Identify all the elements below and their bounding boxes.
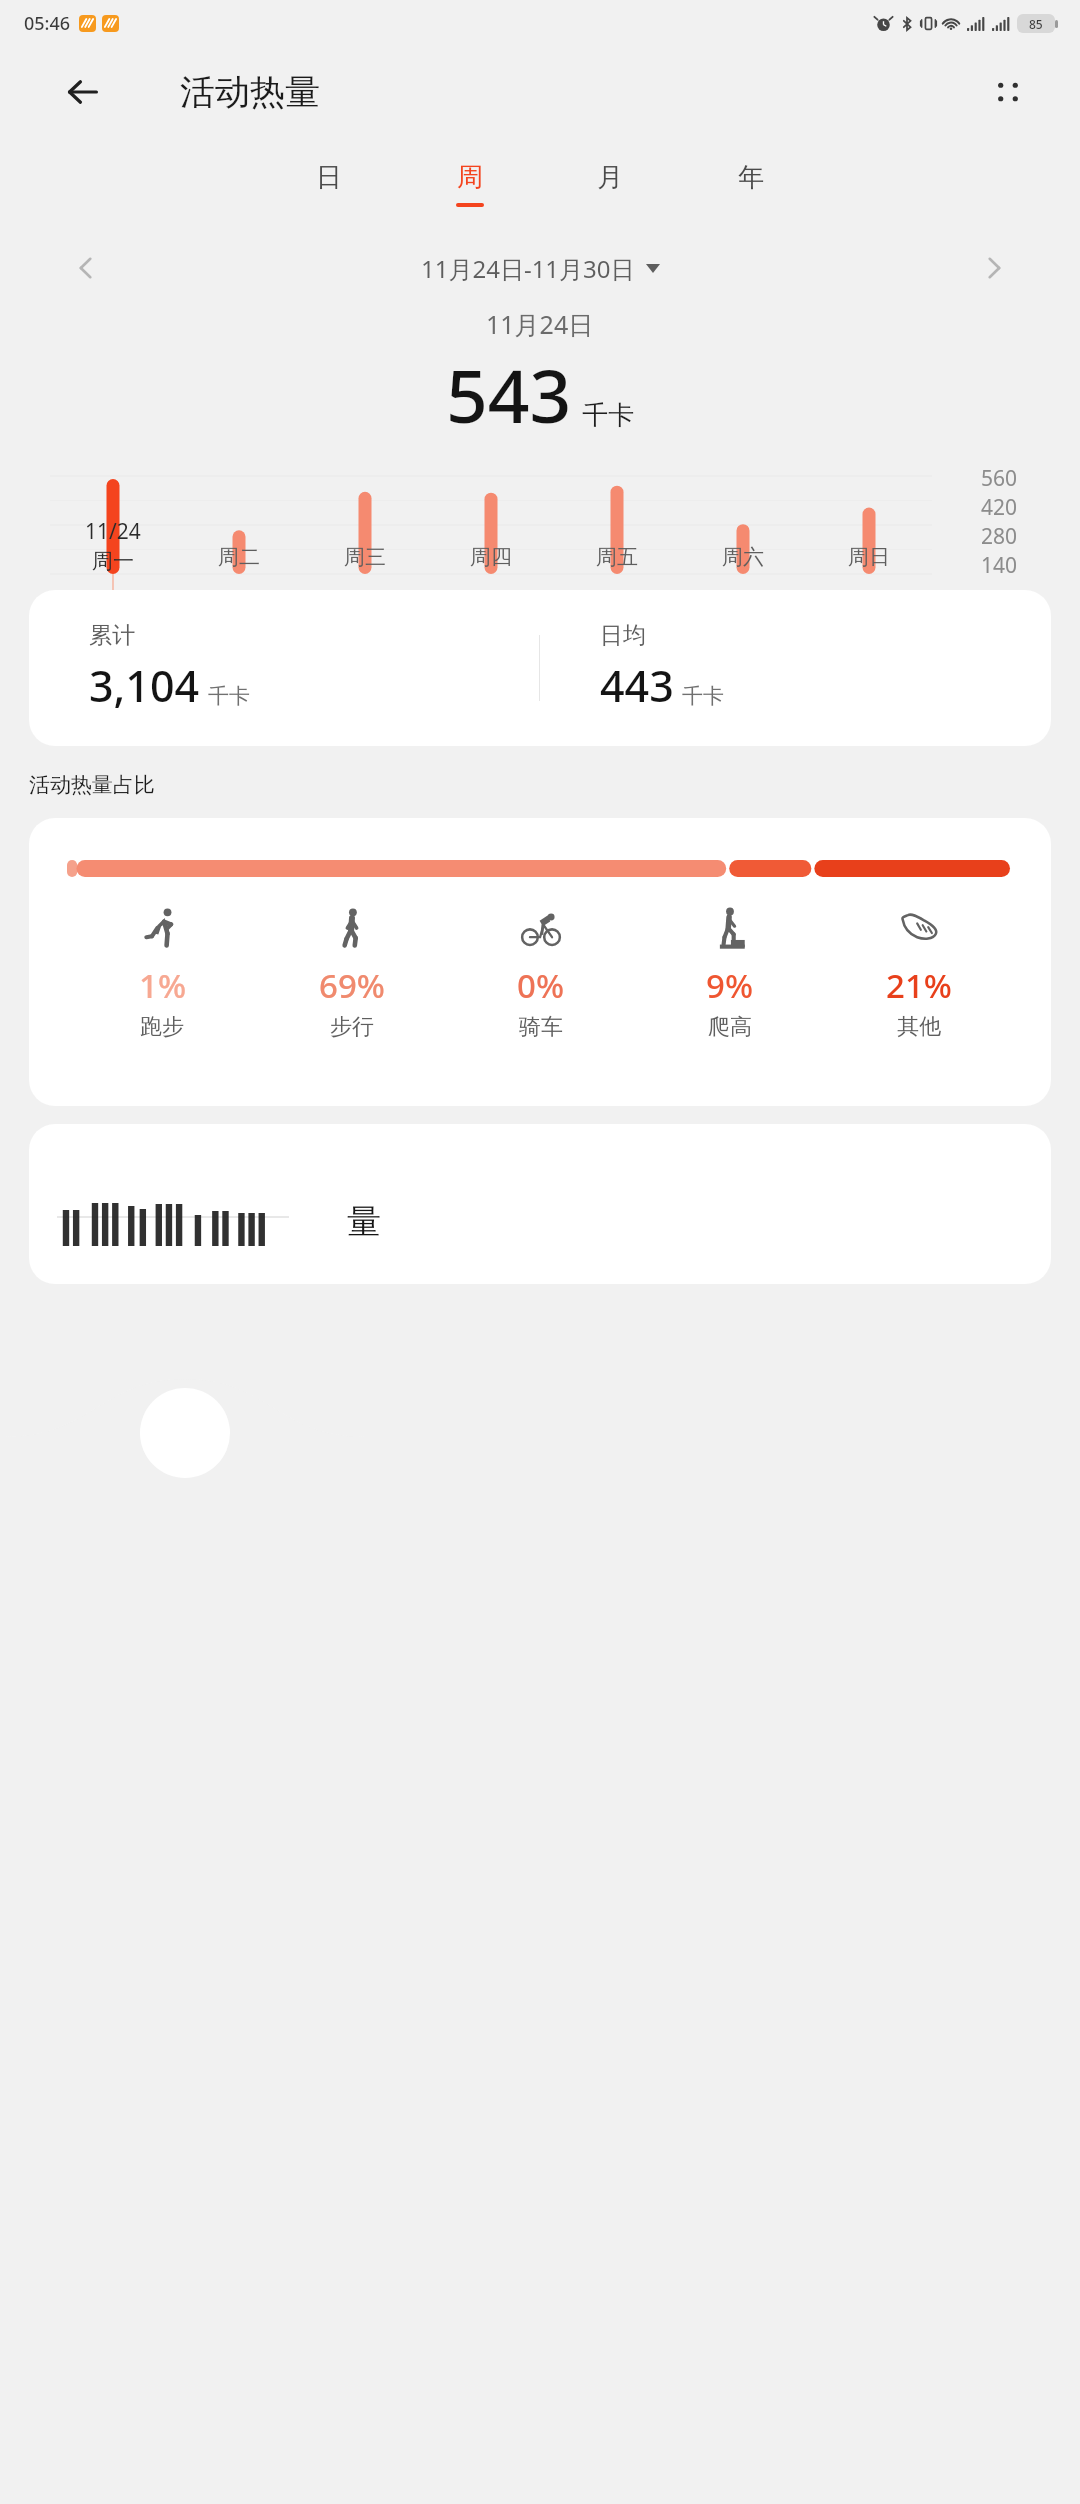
staticText: 千卡: [582, 399, 634, 432]
button[interactable]: 9%: [635, 905, 824, 1041]
staticText: 69%: [319, 963, 385, 1008]
staticText: 量: [347, 1200, 381, 1243]
staticText: 周日: [848, 544, 890, 570]
staticText: 月: [597, 161, 623, 194]
staticText: 日: [316, 161, 342, 194]
staticText: 周三: [344, 544, 386, 570]
button[interactable]: Next week: [968, 243, 1018, 293]
button[interactable]: More options: [982, 66, 1034, 118]
staticText: 560: [981, 464, 1018, 493]
staticText: 85: [1029, 16, 1043, 32]
staticText: 543: [446, 345, 572, 444]
staticText: 活动热量: [180, 70, 320, 114]
staticText: 11/24: [85, 517, 141, 546]
staticText: 其他: [897, 1013, 941, 1041]
button[interactable]: 69%: [257, 905, 446, 1041]
staticText: 骑车: [519, 1013, 563, 1041]
button[interactable]: 1%: [67, 905, 257, 1041]
staticText: 跑步: [140, 1013, 184, 1041]
staticText: 年: [738, 161, 764, 194]
button[interactable]: 周: [441, 157, 499, 211]
button[interactable]: 年: [722, 157, 780, 211]
staticText: 步行: [330, 1013, 374, 1041]
button[interactable]: Previous week: [62, 243, 112, 293]
staticText: 05:46: [24, 11, 71, 36]
button[interactable]: 月: [581, 157, 639, 211]
staticText: 爬高: [708, 1013, 752, 1041]
button[interactable]: 0%: [446, 905, 635, 1041]
staticText: 周六: [722, 544, 764, 570]
staticText: 周一: [92, 548, 134, 574]
staticText: 280: [981, 522, 1018, 551]
staticText: 11月24日-11月30日: [421, 252, 635, 285]
staticText: 千卡: [208, 683, 250, 709]
staticText: 9%: [706, 963, 753, 1008]
staticText: 11月24日: [486, 307, 594, 341]
staticText: 千卡: [682, 683, 724, 709]
staticText: 周: [457, 161, 483, 194]
staticText: 周二: [218, 544, 260, 570]
staticText: 周四: [470, 544, 512, 570]
button[interactable]: 日: [300, 157, 358, 211]
staticText: 140: [981, 551, 1018, 574]
staticText: 443: [600, 656, 674, 715]
staticText: 3,104: [89, 656, 200, 715]
staticText: 420: [981, 493, 1018, 522]
button[interactable]: 量: [29, 1124, 1051, 1284]
staticText: 1%: [139, 963, 186, 1008]
staticText: 0%: [517, 963, 564, 1008]
button[interactable]: 累计: [29, 590, 1051, 746]
button[interactable]: 1%: [29, 818, 1051, 1106]
button[interactable]: Back: [58, 67, 108, 117]
staticText: 累计: [89, 621, 135, 650]
staticText: 21%: [886, 963, 952, 1008]
button[interactable]: 11月24日-11月30日: [421, 252, 660, 285]
button[interactable]: 21%: [824, 905, 1013, 1041]
staticText: 活动热量占比: [29, 772, 155, 798]
staticText: 日均: [600, 621, 646, 650]
staticText: 周五: [596, 544, 638, 570]
